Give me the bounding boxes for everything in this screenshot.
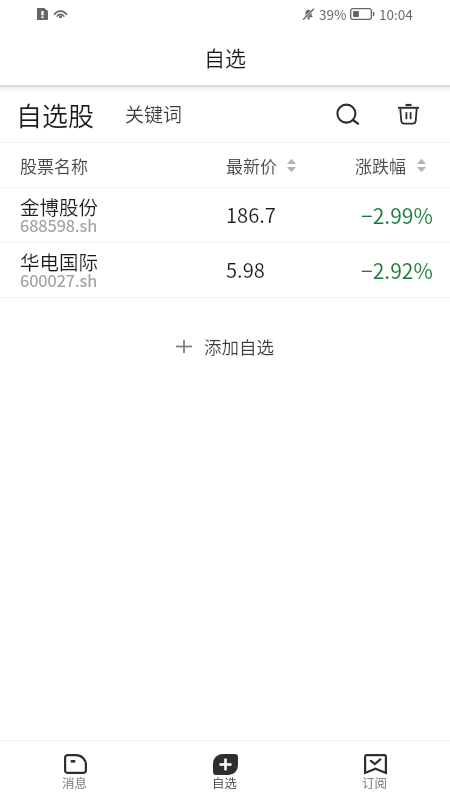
button[interactable]: 自选 — [150, 741, 300, 800]
staticText: 涨跌幅 — [355, 153, 406, 178]
button[interactable]: 关键词 — [111, 90, 197, 138]
button[interactable]: Search — [326, 92, 370, 136]
button[interactable]: 添加自选 — [160, 324, 290, 369]
staticText: 关键词 — [125, 100, 183, 128]
staticText: 自选 — [212, 773, 238, 791]
staticText: 添加自选 — [204, 334, 274, 359]
staticText: −2.92% — [361, 255, 433, 285]
staticText: 订阅 — [362, 773, 388, 791]
button[interactable]: 华电国际 — [0, 242, 450, 297]
staticText: 39% — [319, 4, 347, 24]
button[interactable]: 消息 — [0, 741, 150, 800]
staticText: 自选股 — [16, 96, 95, 132]
staticText: 华电国际 — [20, 247, 99, 275]
staticText: 688598.sh — [20, 213, 98, 237]
staticText: 消息 — [62, 773, 88, 791]
staticText: 10:04 — [379, 4, 413, 24]
staticText: 股票名称 — [20, 153, 88, 178]
staticText: −2.99% — [361, 200, 433, 230]
button[interactable]: 自选股 — [2, 86, 109, 142]
staticText: 5.98 — [226, 255, 265, 284]
button[interactable]: 订阅 — [300, 741, 450, 800]
button[interactable]: 涨跌幅 — [355, 153, 426, 178]
staticText: 600027.sh — [20, 268, 98, 292]
button[interactable]: 最新价 — [226, 153, 296, 178]
staticText: 186.7 — [226, 200, 276, 229]
staticText: 自选 — [204, 42, 246, 72]
button[interactable]: Delete all — [386, 92, 430, 136]
button[interactable]: 金博股份 — [0, 187, 450, 242]
staticText: 金博股份 — [20, 192, 99, 220]
staticText: 最新价 — [226, 153, 277, 178]
